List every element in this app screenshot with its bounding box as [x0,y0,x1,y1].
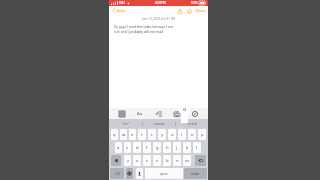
staticText: So guys I mad this video because I am [114,24,173,28]
button[interactable]: o [188,129,196,140]
button[interactable]: Checklist [154,109,164,119]
staticText: u [171,132,174,138]
button[interactable]: z [124,155,131,166]
staticText: r [141,132,143,138]
staticText: recover [154,122,165,126]
button[interactable]: Notes [111,7,127,14]
staticText: 100% [191,1,198,5]
staticText: l [196,145,198,151]
button[interactable]: Aa [135,109,145,119]
staticText: b [166,158,169,164]
staticText: record [187,122,197,126]
button[interactable]: a [115,142,122,153]
button[interactable]: Done [195,7,206,14]
staticText: "rec" [122,122,129,126]
staticText: e [131,132,134,138]
button[interactable]: r [138,129,146,140]
staticText: n [176,158,179,164]
staticText: s [126,145,129,151]
button[interactable]: Emoji [126,168,133,179]
button[interactable]: "rec" [109,119,142,128]
button[interactable]: q [111,129,118,140]
staticText: i [181,132,183,138]
staticText: o [183,105,187,112]
staticText: return [191,172,200,176]
staticText: z [127,158,129,164]
button[interactable]: u [168,129,176,140]
button[interactable]: w [120,129,127,140]
button[interactable]: Dictation [136,168,143,179]
button[interactable]: Share [176,7,184,15]
button[interactable]: k [183,142,191,153]
staticText: 123 [115,172,120,176]
staticText: c [146,158,149,164]
button[interactable]: m [183,155,191,166]
button[interactable]: b [163,155,171,166]
button[interactable]: Markup [190,109,200,119]
button[interactable]: n [173,155,181,166]
staticText: m [185,158,189,164]
button[interactable]: record [176,119,208,128]
button[interactable]: New note [185,7,193,15]
button[interactable]: space [145,168,183,179]
button[interactable]: i [178,129,186,140]
staticText: f [146,145,148,151]
staticText: k [186,145,189,151]
staticText: p [201,132,204,138]
button[interactable]: v [153,155,161,166]
button[interactable]: Table [117,109,127,119]
button[interactable]: t [148,129,156,140]
button[interactable]: f [143,142,151,153]
staticText: g [156,145,159,151]
button[interactable]: e [129,129,136,140]
button[interactable]: h [163,142,171,153]
staticText: AT&T [119,1,126,5]
staticText: space [160,172,168,176]
button[interactable]: Backspace [195,155,206,166]
staticText: 6:53 PM [155,1,166,5]
button[interactable]: p [198,129,206,140]
button[interactable]: l [193,142,201,153]
staticText: w [122,132,126,138]
button[interactable]: c [143,155,151,166]
button[interactable]: Camera [172,109,182,119]
staticText: t [151,132,153,138]
button[interactable]: s [124,142,131,153]
button[interactable]: j [173,142,181,153]
staticText: d [136,145,139,151]
button[interactable]: y [158,129,166,140]
staticText: Done [196,8,205,13]
button[interactable]: d [133,142,141,153]
staticText: sick and I probably will not mad [114,29,164,33]
staticText: q [113,132,116,138]
staticText: a [117,145,120,151]
staticText: Aa [137,111,143,117]
button[interactable]: 123 [110,168,124,179]
staticText: Notes [116,8,126,13]
button[interactable]: recover [143,119,175,128]
staticText: x [136,158,139,164]
staticText: June 13, 2020 at 6:51 PM [114,17,203,21]
staticText: j [176,145,178,151]
button[interactable]: x [133,155,141,166]
staticText: o [191,132,194,138]
button[interactable]: g [153,142,161,153]
staticText: y [161,132,164,138]
staticText: h [166,145,169,151]
staticText: v [156,158,159,164]
button[interactable]: Shift [111,155,121,166]
button[interactable]: return [184,168,207,179]
